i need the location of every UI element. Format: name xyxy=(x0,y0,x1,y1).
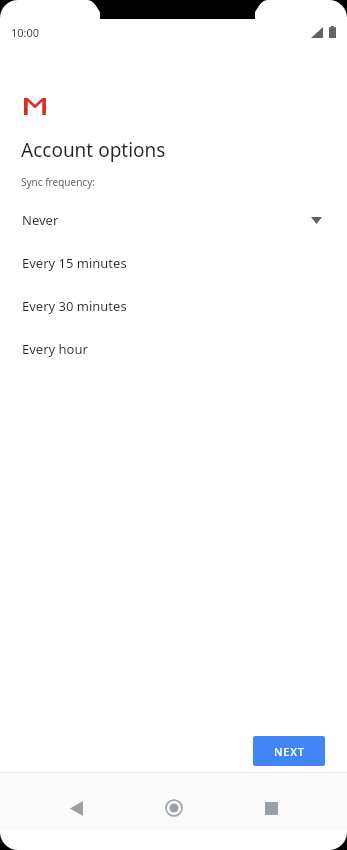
button[interactable]: Back xyxy=(54,786,98,830)
staticText: NEXT xyxy=(274,744,305,759)
staticText: Every 15 minutes xyxy=(22,254,127,272)
staticText: Sync frequency: xyxy=(21,175,95,189)
staticText: Never xyxy=(22,211,59,229)
button[interactable]: Every 15 minutes xyxy=(13,241,290,284)
button[interactable]: Every 15 minutes xyxy=(0,203,347,237)
staticText: Automatically download attachments xyxy=(52,265,262,281)
button[interactable]: Every hour xyxy=(13,327,290,370)
button[interactable]: Every 30 minutes xyxy=(13,284,290,327)
button[interactable]: Home xyxy=(152,786,196,830)
button[interactable]: Recent apps xyxy=(249,786,293,830)
staticText: Every hour xyxy=(22,340,88,358)
button[interactable]: NEXT xyxy=(253,736,325,766)
other: Open sync frequency dropdown xyxy=(311,217,322,224)
staticText: Every 30 minutes xyxy=(22,297,127,315)
staticText: Account options xyxy=(21,137,166,163)
staticText: Every 15 minutes xyxy=(21,211,126,229)
staticText: 10:00 xyxy=(11,25,40,40)
button[interactable]: Never xyxy=(13,198,290,241)
button[interactable]: Automatically download attachments xyxy=(24,265,323,297)
